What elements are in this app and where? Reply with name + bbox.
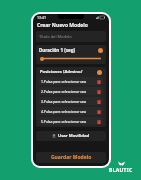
button[interactable]: Usar Movilidad <box>36 131 106 141</box>
button[interactable]: Eliminar posición 2 <box>97 89 101 94</box>
button[interactable]: Control de duración <box>39 56 103 61</box>
button[interactable]: Guardar Modelo <box>36 152 106 163</box>
staticText: 1.Pulsa para seleccionar una posición <box>41 79 96 84</box>
button[interactable]: 1.Pulsa para seleccionar una posición <box>39 77 103 85</box>
button[interactable]: Título del Modelo <box>36 31 106 42</box>
staticText: Usar Movilidad <box>58 133 90 139</box>
staticText: 2.Pulsa para seleccionar una posición <box>41 89 96 94</box>
button[interactable]: Eliminar posición 3 <box>97 99 101 104</box>
staticText: 4.Pulsa para seleccionar una posición <box>41 109 96 114</box>
staticText: Crear Nuevo Modelo <box>37 22 88 29</box>
button[interactable]: 2.Pulsa para seleccionar una posición <box>39 87 103 95</box>
staticText: Posiciones (Admino/ Posición) <box>40 69 97 75</box>
staticText: Título del Modelo <box>39 34 72 39</box>
button[interactable]: Eliminar posición 5 <box>97 119 101 124</box>
staticText: Guardar Modelo <box>51 154 92 161</box>
staticText: BLAUTIC <box>109 167 133 174</box>
button[interactable]: 3.Pulsa para seleccionar una posición <box>39 97 103 105</box>
button[interactable]: Añadir posición <box>97 70 102 75</box>
button[interactable]: Opciones duración <box>98 48 103 53</box>
button[interactable]: Eliminar posición 4 <box>97 109 101 114</box>
staticText: 5.Pulsa para seleccionar una posición <box>41 119 96 124</box>
staticText: 13:41 <box>37 15 46 20</box>
staticText: 3.Pulsa para seleccionar una posición <box>41 99 96 104</box>
staticText: Duración 1 (seg) <box>39 47 98 53</box>
button[interactable]: Eliminar posición 1 <box>97 79 101 84</box>
button[interactable]: 4.Pulsa para seleccionar una posición <box>39 107 103 115</box>
button[interactable]: 5.Pulsa para seleccionar una posición <box>39 117 103 125</box>
